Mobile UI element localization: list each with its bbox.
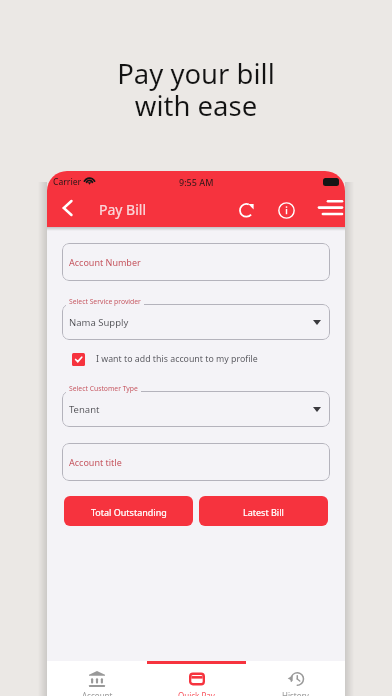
button[interactable]: I want to add this account to my profile bbox=[62, 346, 330, 372]
staticText: Latest Bill bbox=[243, 506, 284, 518]
staticText: Account title bbox=[69, 456, 122, 468]
button[interactable]: History bbox=[246, 661, 345, 696]
button[interactable]: Back bbox=[55, 196, 79, 220]
button[interactable]: Account title bbox=[62, 443, 330, 481]
button[interactable]: Account bbox=[47, 661, 147, 696]
button[interactable]: Tenant bbox=[62, 391, 330, 427]
staticText: Select Customer Type bbox=[69, 384, 138, 393]
staticText: Account Number bbox=[69, 256, 141, 268]
staticText: Pay your bill with ease bbox=[0, 55, 392, 124]
button[interactable]: Quick Pay bbox=[147, 661, 246, 696]
button[interactable]: Refresh bbox=[234, 197, 260, 223]
button[interactable]: Nama Supply bbox=[62, 304, 330, 340]
staticText: Select Service provider bbox=[69, 297, 141, 306]
staticText: 9:55 AM bbox=[179, 176, 214, 188]
staticText: History bbox=[282, 690, 309, 696]
button[interactable]: Information bbox=[273, 197, 299, 223]
button[interactable]: Latest Bill bbox=[199, 496, 328, 526]
staticText: I want to add this account to my profile bbox=[96, 353, 258, 365]
staticText: Pay Bill bbox=[99, 200, 147, 219]
staticText: Nama Supply bbox=[69, 316, 129, 329]
button[interactable]: Menu bbox=[317, 194, 343, 220]
staticText: Carrier bbox=[53, 176, 82, 188]
button[interactable]: Account Number bbox=[62, 243, 330, 281]
staticText: Account bbox=[82, 690, 113, 696]
staticText: Quick Pay bbox=[178, 690, 215, 696]
staticText: Tenant bbox=[69, 403, 100, 416]
button[interactable]: Total Outstanding bbox=[64, 496, 193, 526]
staticText: Total Outstanding bbox=[91, 506, 167, 518]
